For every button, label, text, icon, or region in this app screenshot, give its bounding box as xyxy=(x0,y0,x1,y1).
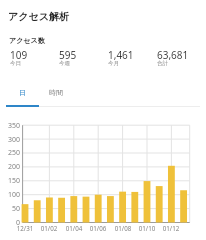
staticText: 今月 xyxy=(108,60,119,67)
staticText: 01/08 xyxy=(112,224,134,232)
staticText: 200 xyxy=(0,162,20,172)
staticText: 109 xyxy=(10,48,28,62)
staticText: 01/04 xyxy=(63,224,85,232)
staticText: 01/02 xyxy=(38,224,60,232)
staticText: 350 xyxy=(0,121,20,131)
staticText: 時間 xyxy=(49,88,63,97)
staticText: 595 xyxy=(59,48,77,62)
staticText: 300 xyxy=(0,135,20,145)
staticText: 1,461 xyxy=(108,48,134,62)
staticText: 01/10 xyxy=(136,224,158,232)
staticText: 01/12 xyxy=(160,224,182,232)
staticText: 50 xyxy=(0,204,20,214)
staticText: 150 xyxy=(0,176,20,186)
button[interactable]: 109 xyxy=(10,48,56,69)
staticText: 250 xyxy=(0,148,20,158)
button[interactable]: 時間 xyxy=(39,79,72,105)
button[interactable]: 595 xyxy=(59,48,105,69)
staticText: 今週 xyxy=(59,60,70,67)
staticText: 今日 xyxy=(10,60,21,67)
staticText: アクセス解析 xyxy=(8,10,69,23)
staticText: 0 xyxy=(0,218,20,228)
button[interactable]: 日 xyxy=(6,79,39,105)
staticText: アクセス数 xyxy=(9,36,45,45)
staticText: 12/31 xyxy=(14,224,36,232)
staticText: 63,681 xyxy=(157,48,189,62)
staticText: 100 xyxy=(0,190,20,200)
button[interactable]: 1,461 xyxy=(108,48,154,69)
staticText: 合計 xyxy=(157,60,168,67)
staticText: 01/06 xyxy=(87,224,109,232)
button[interactable]: 63,681 xyxy=(157,48,203,69)
staticText: 日 xyxy=(19,88,26,97)
